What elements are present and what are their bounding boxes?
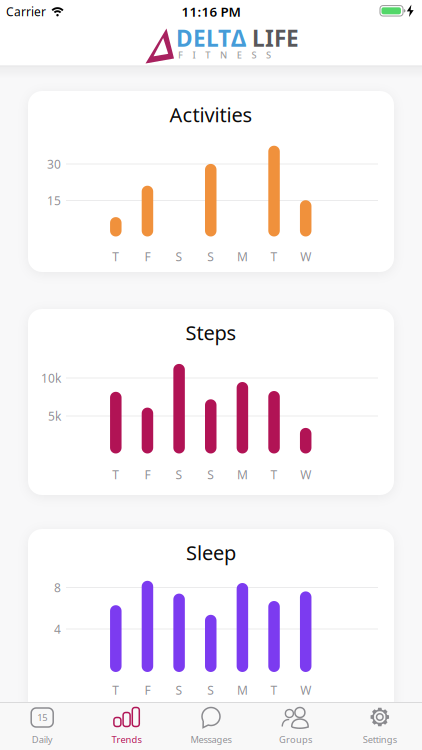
- staticText: Daily: [32, 733, 53, 746]
- staticText: 11:16 PM: [181, 3, 240, 20]
- staticText: Messages: [190, 733, 231, 746]
- staticText: S: [207, 682, 214, 698]
- staticText: T: [205, 49, 210, 61]
- staticText: S: [176, 682, 183, 698]
- staticText: 30: [47, 156, 61, 172]
- staticText: Steps: [185, 319, 236, 346]
- staticText: T: [112, 682, 119, 698]
- staticText: M: [237, 682, 248, 698]
- staticText: 10k: [41, 370, 61, 386]
- staticText: Settings: [363, 733, 397, 746]
- staticText: F: [144, 466, 150, 482]
- button[interactable]: Groups: [253, 702, 338, 750]
- staticText: F: [178, 49, 183, 61]
- staticText: 4: [54, 621, 61, 637]
- staticText: T: [112, 466, 119, 482]
- staticText: F: [144, 248, 150, 264]
- staticText: W: [300, 248, 311, 264]
- button[interactable]: Messages: [169, 702, 253, 750]
- staticText: 5k: [48, 408, 61, 424]
- staticText: E: [237, 49, 242, 61]
- staticText: T: [112, 248, 119, 264]
- staticText: W: [300, 466, 311, 482]
- staticText: M: [237, 248, 248, 264]
- button[interactable]: Settings: [338, 702, 422, 750]
- staticText: T: [271, 466, 278, 482]
- staticText: T: [271, 682, 278, 698]
- staticText: S: [266, 49, 271, 61]
- staticText: Trends: [112, 733, 142, 746]
- staticText: F: [144, 682, 150, 698]
- staticText: DELTΔ: [176, 23, 246, 53]
- button[interactable]: Trends: [84, 702, 169, 750]
- staticText: S: [207, 466, 214, 482]
- staticText: 8: [54, 579, 61, 595]
- button[interactable]: 15: [0, 702, 84, 750]
- staticText: LIFE: [252, 23, 299, 53]
- staticText: T: [271, 248, 278, 264]
- staticText: Activities: [169, 101, 252, 128]
- staticText: Groups: [279, 733, 312, 746]
- staticText: Carrier: [6, 3, 46, 19]
- staticText: 15: [47, 192, 61, 208]
- staticText: I: [193, 49, 196, 61]
- staticText: S: [207, 248, 214, 264]
- staticText: N: [220, 49, 227, 61]
- staticText: S: [251, 49, 256, 61]
- staticText: Sleep: [186, 539, 236, 566]
- staticText: S: [176, 248, 183, 264]
- staticText: S: [176, 466, 183, 482]
- staticText: 15: [37, 711, 47, 724]
- staticText: M: [237, 466, 248, 482]
- staticText: W: [300, 682, 311, 698]
